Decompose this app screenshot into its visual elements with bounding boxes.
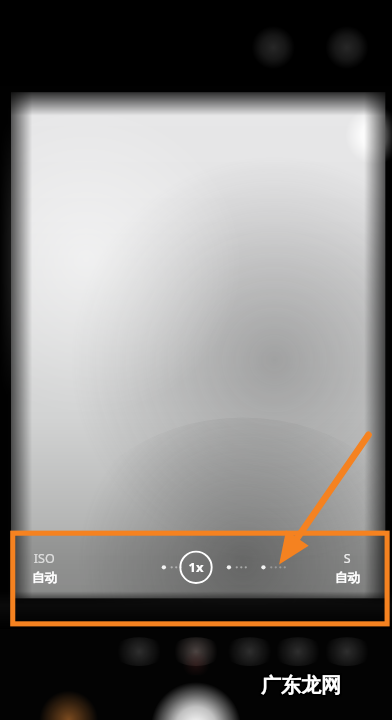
button[interactable]: Shutter bbox=[149, 688, 243, 720]
button[interactable]: Settings bbox=[324, 22, 370, 74]
button[interactable]: ISO auto bbox=[16, 547, 79, 595]
button[interactable]: Shutter speed auto bbox=[314, 547, 377, 595]
button[interactable]: Flash bbox=[250, 22, 296, 74]
button[interactable]: Photo mode bbox=[157, 634, 235, 676]
button[interactable]: Zoom 1x bbox=[178, 547, 213, 587]
